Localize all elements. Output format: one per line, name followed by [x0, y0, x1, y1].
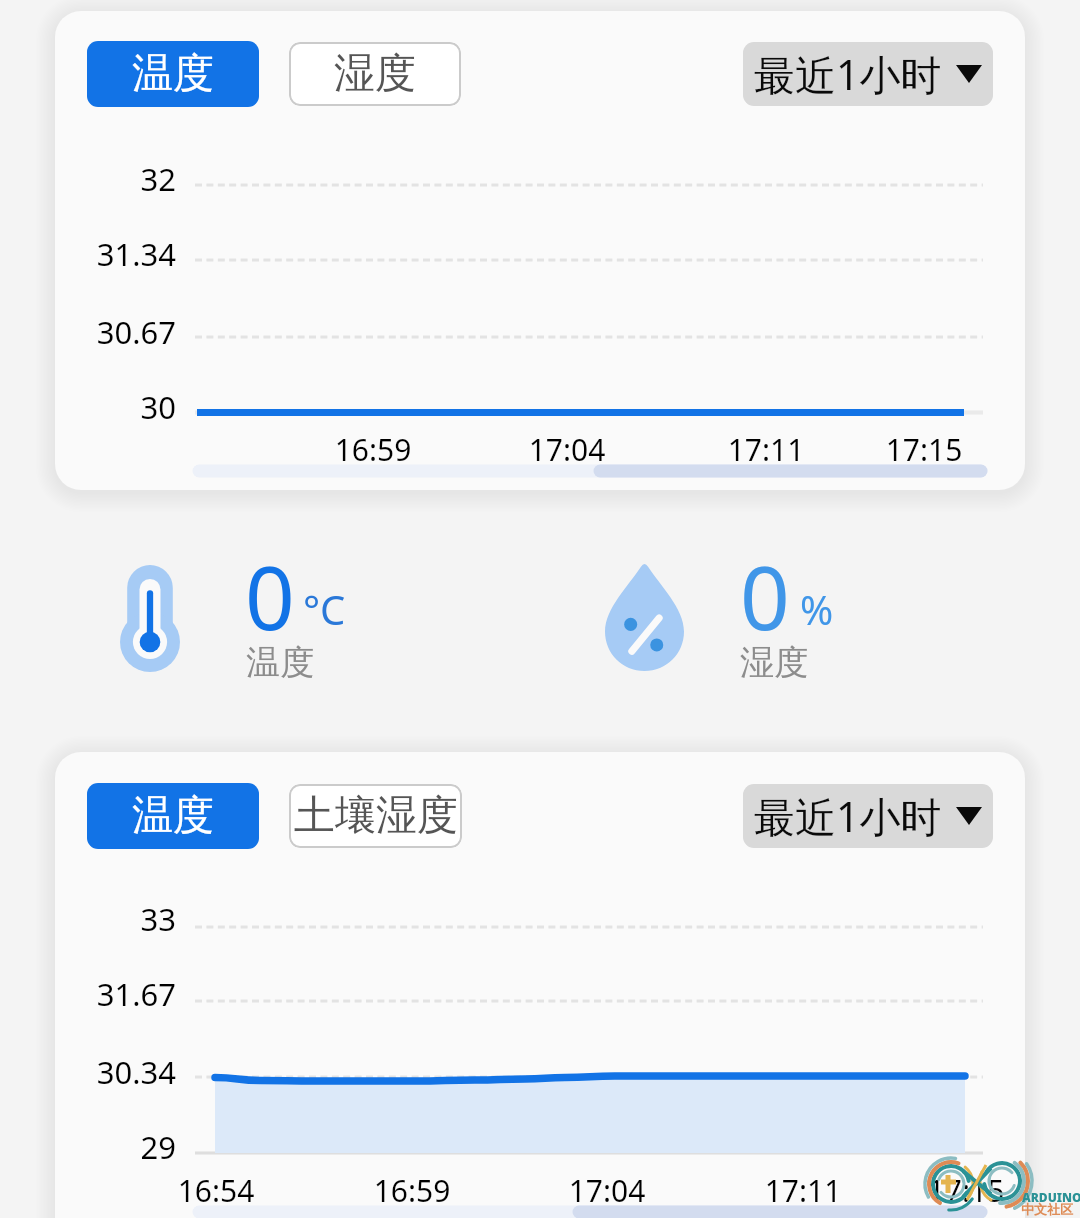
staticText: 17:11 [686, 429, 846, 470]
button[interactable]: 最近1小时 [743, 42, 993, 106]
staticText: 0 [245, 537, 295, 655]
staticText: 30 [55, 386, 176, 428]
staticText: 17:04 [527, 1170, 687, 1211]
staticText: 30.67 [55, 311, 176, 353]
staticText: ARDUINO [1022, 1189, 1080, 1205]
staticText: 16:54 [136, 1170, 296, 1211]
button[interactable]: 温度 [87, 41, 259, 107]
staticText: 最近1小时 [754, 46, 942, 102]
other: Humidity [605, 563, 684, 671]
staticText: 33 [55, 898, 176, 940]
staticText: 17:15 [886, 1170, 1025, 1211]
staticText: 16:59 [293, 429, 453, 470]
button[interactable]: 最近1小时 [743, 784, 993, 848]
staticText: 31.67 [55, 973, 176, 1015]
staticText: 29 [55, 1126, 176, 1168]
staticText: 湿度 [334, 48, 416, 100]
staticText: % [800, 582, 834, 636]
button[interactable]: 湿度 [289, 42, 461, 106]
staticText: °C [303, 582, 346, 636]
staticText: 16:59 [332, 1170, 492, 1211]
staticText: 17:15 [844, 429, 1004, 470]
staticText: 32 [55, 158, 176, 200]
staticText: 湿度 [740, 641, 808, 684]
button[interactable]: 温度 [87, 783, 259, 849]
staticText: 30.34 [55, 1051, 176, 1093]
staticText: 17:04 [487, 429, 647, 470]
other: Temperature [120, 565, 180, 672]
staticText: 31.34 [55, 233, 176, 275]
staticText: 土壤湿度 [294, 790, 458, 842]
staticText: 17:11 [723, 1170, 883, 1211]
staticText: 温度 [132, 48, 214, 100]
staticText: 温度 [132, 790, 214, 842]
staticText: 温度 [246, 641, 314, 684]
staticText: 0 [740, 537, 790, 655]
button[interactable]: 土壤湿度 [289, 784, 462, 848]
staticText: 中文社区 [1021, 1201, 1073, 1217]
staticText: 最近1小时 [754, 788, 942, 844]
